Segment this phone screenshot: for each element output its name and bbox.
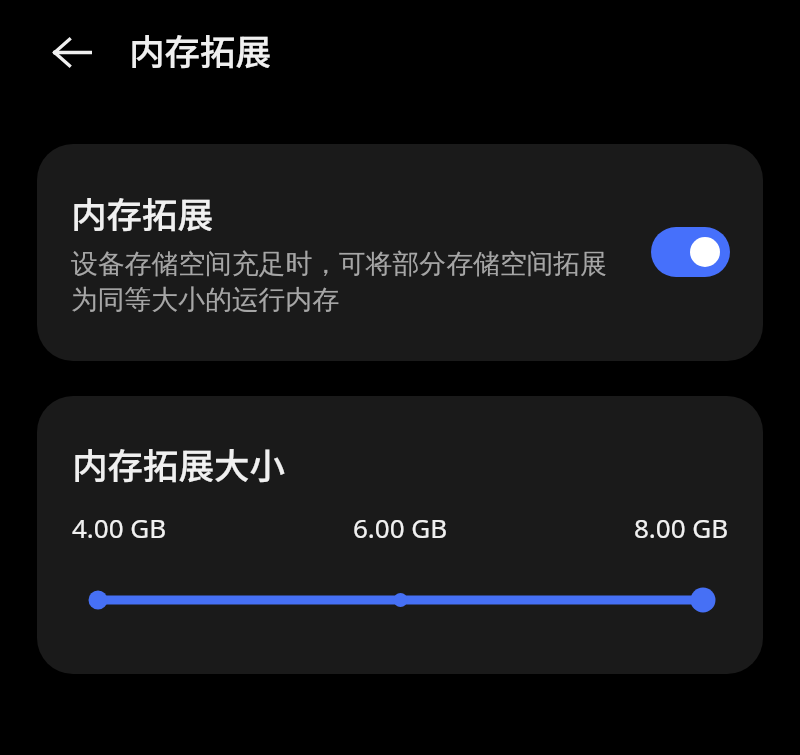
button[interactable]: 内存拓展大小滑块 <box>72 582 729 618</box>
button[interactable]: 内存拓展 <box>37 144 763 361</box>
staticText: 设备存储空间充足时，可将部分存储空间拓展为同等大小的运行内存 <box>71 247 616 317</box>
staticText: 4.00 GB <box>72 510 167 545</box>
button[interactable]: 内存拓展开关 <box>651 227 730 277</box>
staticText: 8.00 GB <box>634 510 729 545</box>
staticText: 内存拓展 <box>129 24 272 75</box>
staticText: 内存拓展大小 <box>72 438 286 489</box>
staticText: 6.00 GB <box>353 510 448 545</box>
staticText: 内存拓展 <box>71 187 214 238</box>
button[interactable]: Back <box>37 17 107 87</box>
